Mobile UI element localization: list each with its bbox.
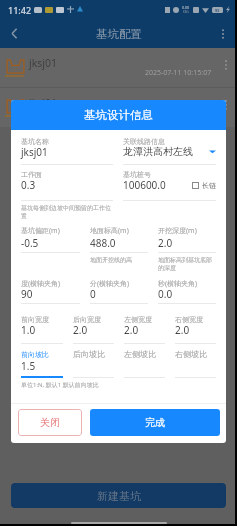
staticText: 单位1:N, 默认1 默认前向坡比 (21, 381, 99, 389)
button[interactable]: 工作面 (21, 165, 113, 201)
staticText: 左侧坡比 (124, 349, 156, 359)
staticText: 2.0 (124, 323, 139, 337)
staticText: 新建基坑 (97, 489, 141, 503)
button[interactable]: jksj01 (0, 88, 237, 127)
staticText: 完成 (145, 416, 165, 429)
staticText: 地面标高(m) (90, 226, 129, 236)
staticText: 秒(横轴夹角) (158, 279, 198, 289)
staticText: 后向坡比 (73, 349, 105, 359)
staticText: 前向宽度 (21, 315, 49, 324)
staticText: 2.0 (175, 323, 190, 337)
button[interactable]: 左侧宽度 (124, 304, 165, 344)
staticText: 93 (215, 8, 220, 13)
button[interactable]: 基坑名称 (21, 130, 113, 165)
staticText: 2.0 (158, 236, 173, 250)
staticText: 前向坡比 (21, 350, 49, 359)
button[interactable]: 度(横轴夹角) (21, 253, 80, 304)
staticText: jksj01 (21, 145, 48, 159)
staticText: 关闭 (40, 416, 60, 429)
staticText: 度(横轴夹角) (21, 279, 61, 289)
staticText: 分(横轴夹角) (90, 279, 130, 289)
staticText: 基坑每侧到边坡中间预留的工作位置 (21, 204, 113, 220)
staticText: 基坑名称 (21, 137, 49, 146)
staticText: 0.0 (158, 287, 173, 301)
staticText: 0 (90, 287, 96, 301)
button[interactable]: 关闭 (18, 409, 82, 436)
staticText: 开挖深度(m) (158, 226, 197, 236)
button[interactable]: 后向宽度 (73, 304, 114, 344)
button[interactable]: 前向坡比 (21, 344, 63, 378)
staticText: 1.0 (21, 323, 36, 337)
button[interactable]: Back (0, 19, 29, 48)
staticText: 100600.0 (123, 178, 166, 192)
staticText: 0.00 (182, 5, 190, 10)
button[interactable]: More options (208, 19, 237, 48)
staticText: 2025-07-11 10:15:07 (145, 108, 212, 118)
staticText: 11:42 (8, 4, 32, 16)
staticText: -0.5 (21, 236, 39, 250)
staticText: 488.0 (90, 236, 116, 250)
button[interactable]: 新建基坑 (11, 483, 226, 508)
staticText: jksj01 (29, 96, 58, 110)
staticText: 基坑设计信息 (84, 108, 153, 122)
button[interactable]: 后向坡比 (73, 344, 114, 378)
button[interactable]: 右侧坡比 (175, 344, 216, 378)
staticText: 2.0 (73, 323, 88, 337)
staticText: 工作面 (21, 170, 42, 179)
button[interactable]: 左侧坡比 (124, 344, 165, 378)
staticText: 1.5 (21, 359, 36, 373)
button[interactable]: 秒(横轴夹角) (158, 253, 216, 304)
button[interactable]: 完成 (90, 409, 220, 436)
staticText: 基坑配置 (96, 27, 142, 41)
staticText: 0.3 (21, 178, 36, 192)
button[interactable]: Item menu (215, 54, 237, 76)
button[interactable]: jksj01 (0, 48, 237, 87)
button[interactable]: 基坑偏距(m) (21, 201, 80, 253)
staticText: 龙潭洪高村左线 (123, 145, 193, 158)
staticText: 2025-07-11 10:15:07 (145, 68, 212, 78)
button[interactable]: 基坑桩号 (123, 165, 216, 201)
staticText: KB/s (183, 10, 189, 14)
staticText: 右侧坡比 (175, 349, 207, 359)
button[interactable]: 地面标高(m) (90, 201, 148, 253)
button[interactable]: 开挖深度(m) (158, 201, 216, 253)
staticText: 地面标高到基坑底部的深度 (158, 256, 216, 272)
button[interactable]: 关联线路信息 (123, 130, 216, 165)
staticText: 后向宽度 (73, 315, 101, 324)
staticText: 基坑桩号 (123, 170, 151, 179)
staticText: 左侧宽度 (124, 315, 152, 324)
button[interactable]: 右侧宽度 (175, 304, 216, 344)
button[interactable]: 前向宽度 (21, 304, 63, 344)
staticText: 长链 (202, 181, 216, 190)
staticText: 基坑偏距(m) (21, 226, 60, 236)
staticText: 关联线路信息 (123, 137, 165, 146)
button[interactable]: Item menu (215, 94, 237, 116)
button[interactable]: 分(横轴夹角) (90, 253, 148, 304)
staticText: 右侧宽度 (175, 315, 203, 324)
staticText: jksj01 (29, 56, 58, 70)
staticText: 地面开挖线的高 (90, 256, 132, 264)
staticText: 90 (21, 287, 33, 301)
